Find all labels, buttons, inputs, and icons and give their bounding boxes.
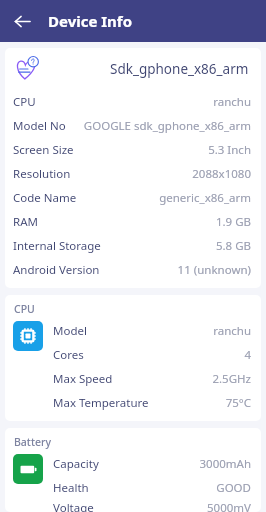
staticText: Cores [53,347,84,363]
button[interactable]: Model No [5,114,261,138]
staticText: Android Version [13,262,100,278]
staticText: ranchu [213,94,251,110]
staticText: Max Temperature [53,395,149,411]
staticText: GOOD [216,480,251,496]
staticText: Sdk_gphone_x86_arm [110,60,249,78]
staticText: Model No [13,118,66,134]
staticText: Resolution [13,166,71,182]
staticText: 1.9 GB [215,214,251,230]
staticText: Model [53,323,87,339]
button[interactable]: Resolution [5,162,261,186]
staticText: 75°C [225,395,251,411]
button[interactable]: Screen Size [5,138,261,162]
button[interactable]: CPU [5,90,261,114]
staticText: Screen Size [13,142,74,158]
staticText: Internal Storage [13,238,101,254]
staticText: Max Speed [53,371,113,387]
staticText: Health [53,480,89,496]
button[interactable]: Sdk_gphone_x86_arm [5,48,261,90]
staticText: CPU [13,94,36,110]
staticText: 3000mAh [199,456,251,472]
staticText: 5.3 Inch [208,142,251,158]
staticText: 5000mV [207,500,251,512]
staticText: ranchu [213,323,251,339]
button[interactable]: Back [8,7,36,35]
staticText: CPU [14,302,35,316]
staticText: 2.5GHz [212,371,251,387]
staticText: Battery [14,435,51,449]
staticText: Device Info [48,11,133,31]
button[interactable]: Code Name [5,186,261,210]
staticText: Capacity [53,456,99,472]
staticText: generic_x86_arm [159,190,251,206]
button[interactable]: Android Version [5,258,261,282]
other: Battery [13,454,43,484]
button[interactable]: Capacity [43,452,261,476]
button[interactable]: Voltage [43,500,261,512]
button[interactable]: Health [43,476,261,500]
button[interactable]: RAM [5,210,261,234]
staticText: Voltage [53,500,94,512]
button[interactable]: Max Speed [43,367,261,391]
other: CPU [13,321,43,351]
button[interactable]: Internal Storage [5,234,261,258]
staticText: 4 [244,347,251,363]
button[interactable]: Max Temperature [43,391,261,415]
staticText: Code Name [13,190,77,206]
button[interactable]: Cores [43,343,261,367]
staticText: 11 (unknown) [177,262,251,278]
staticText: 2088x1080 [192,166,251,182]
button[interactable]: Model [43,319,261,343]
staticText: RAM [13,214,38,230]
staticText: GOOGLE sdk_gphone_x86_arm [83,118,251,134]
staticText: 5.8 GB [215,238,251,254]
